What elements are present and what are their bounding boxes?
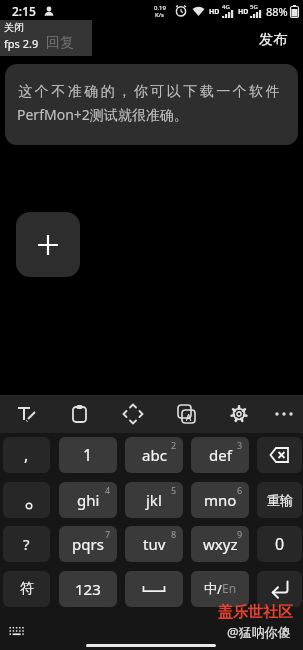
staticText: 7 bbox=[105, 528, 111, 540]
button[interactable] bbox=[15, 402, 39, 426]
button[interactable]: pqrs bbox=[59, 526, 117, 562]
staticText: 1 bbox=[83, 444, 93, 466]
button[interactable]: ? bbox=[3, 526, 50, 562]
staticText: 2:15 bbox=[12, 3, 36, 19]
button[interactable]: mno bbox=[191, 482, 249, 518]
staticText: 这个不准确的，你可以下载一个软件 bbox=[17, 83, 281, 101]
staticText: 2 bbox=[171, 439, 177, 451]
button[interactable]: 重输 bbox=[257, 482, 302, 518]
button[interactable] bbox=[125, 571, 183, 607]
button[interactable]: 符 bbox=[3, 571, 50, 607]
staticText: 5 bbox=[171, 484, 177, 496]
staticText: 符 bbox=[20, 580, 34, 598]
staticText: 中 bbox=[204, 580, 217, 596]
staticText: 4 bbox=[105, 484, 111, 496]
button[interactable]: 1 bbox=[59, 437, 117, 473]
staticText: 0 bbox=[275, 533, 285, 555]
button[interactable]: , bbox=[3, 437, 50, 473]
button[interactable] bbox=[227, 402, 251, 426]
staticText: 3 bbox=[237, 439, 243, 451]
button[interactable]: tuv bbox=[125, 526, 183, 562]
staticText: fps 2.9 bbox=[4, 36, 39, 51]
staticText: 88% bbox=[266, 4, 288, 19]
button[interactable]: 发布 bbox=[259, 31, 287, 49]
button[interactable]: abc bbox=[125, 437, 183, 473]
staticText: 关闭 bbox=[4, 21, 24, 34]
staticText: HD bbox=[209, 7, 220, 17]
staticText: PerfMon+2测试就很准确。 bbox=[17, 105, 188, 124]
staticText: def bbox=[209, 445, 232, 465]
staticText: jkl bbox=[146, 490, 162, 510]
staticText: tuv bbox=[143, 534, 166, 554]
staticText: pqrs bbox=[72, 534, 104, 554]
button[interactable]: 123 bbox=[59, 571, 117, 607]
staticText: 5G bbox=[250, 3, 258, 11]
button[interactable] bbox=[257, 571, 302, 607]
staticText: wxyz bbox=[203, 534, 238, 554]
button[interactable] bbox=[68, 402, 92, 426]
staticText: 回复 bbox=[46, 34, 74, 52]
button[interactable]: def bbox=[191, 437, 249, 473]
staticText: 重输 bbox=[267, 492, 293, 508]
button[interactable]: jkl bbox=[125, 482, 183, 518]
button[interactable]: 0 bbox=[257, 526, 302, 562]
staticText: 6 bbox=[237, 484, 243, 496]
staticText: @猛呐你傻 bbox=[227, 623, 291, 641]
button[interactable] bbox=[16, 212, 80, 277]
staticText: 123 bbox=[75, 579, 101, 599]
staticText: , bbox=[24, 444, 29, 466]
staticText: 8 bbox=[171, 528, 177, 540]
staticText: A bbox=[186, 412, 192, 423]
button[interactable] bbox=[121, 402, 145, 426]
staticText: 4G bbox=[222, 3, 230, 11]
staticText: 盖乐世社区 bbox=[218, 603, 293, 622]
button[interactable]: A bbox=[174, 402, 198, 426]
button[interactable]: 中 bbox=[191, 571, 249, 607]
button[interactable]: ghi bbox=[59, 482, 117, 518]
staticText: 0.19 bbox=[154, 4, 166, 12]
staticText: ghi bbox=[77, 490, 100, 510]
button[interactable]: wxyz bbox=[191, 526, 249, 562]
staticText: En bbox=[222, 580, 237, 596]
staticText: K/s bbox=[155, 11, 164, 19]
staticText: abc bbox=[142, 445, 167, 465]
staticText: ? bbox=[23, 534, 30, 554]
staticText: mno bbox=[204, 490, 237, 510]
button[interactable] bbox=[3, 482, 50, 518]
staticText: 9 bbox=[237, 528, 243, 540]
button[interactable] bbox=[257, 437, 302, 473]
staticText: HD bbox=[238, 7, 249, 17]
button[interactable] bbox=[272, 402, 296, 426]
staticText: / bbox=[217, 580, 222, 598]
